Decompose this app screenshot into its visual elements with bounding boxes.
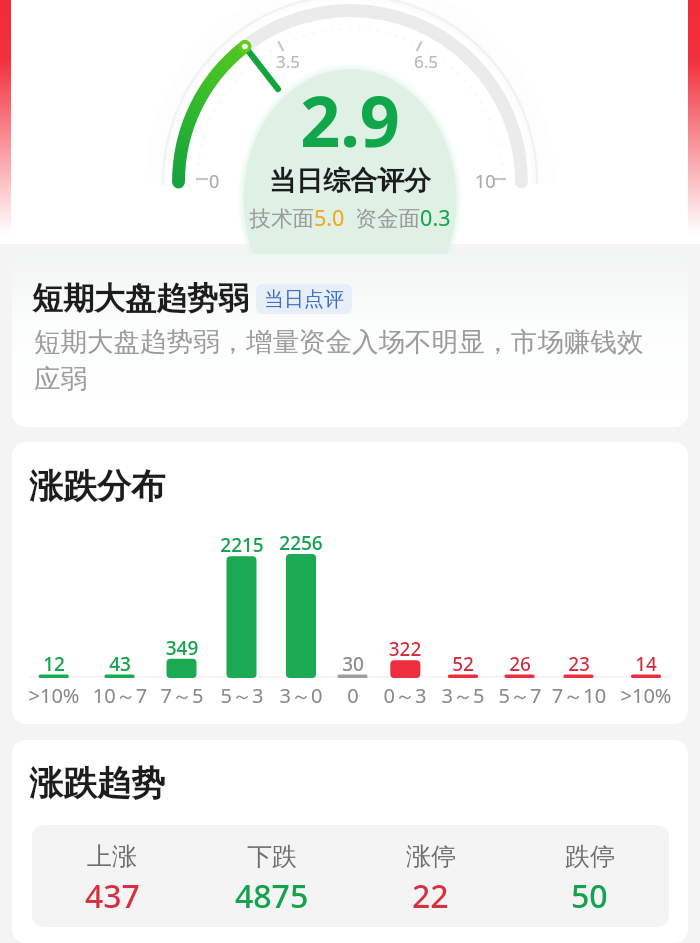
- staticText: 2.9: [0, 72, 700, 167]
- staticText: 349: [147, 635, 217, 661]
- staticText: 0: [209, 169, 220, 194]
- staticText: 5～7: [485, 682, 555, 709]
- staticText: 437: [85, 874, 140, 918]
- button[interactable]: 涨跌分布: [12, 442, 688, 724]
- staticText: 6.5: [414, 50, 439, 73]
- staticText: 43: [85, 651, 155, 677]
- staticText: 7～10: [544, 682, 614, 709]
- staticText: 50: [571, 874, 608, 918]
- staticText: 技术面5.0 资金面0.3: [0, 203, 700, 232]
- staticText: 10: [475, 169, 496, 194]
- button[interactable]: 跌停: [510, 825, 669, 927]
- staticText: 3～0: [266, 682, 336, 709]
- staticText: 上涨: [87, 841, 137, 872]
- staticText: 下跌: [247, 841, 297, 872]
- staticText: 4875: [235, 874, 309, 918]
- staticText: 5～3: [207, 682, 277, 709]
- button[interactable]: 短期大盘趋势弱: [12, 254, 688, 427]
- button[interactable]: 上涨: [32, 825, 192, 927]
- button[interactable]: 涨跌趋势: [12, 740, 688, 943]
- staticText: 当日综合评分: [0, 164, 700, 198]
- staticText: 0～3: [370, 682, 440, 709]
- staticText: 23: [544, 651, 614, 677]
- staticText: 短期大盘趋势弱，增量资金入场不明显，市场赚钱效应弱: [34, 325, 657, 396]
- staticText: 短期大盘趋势弱: [32, 279, 249, 318]
- staticText: 14: [611, 651, 681, 677]
- staticText: 3～5: [428, 682, 498, 709]
- staticText: 26: [485, 651, 555, 677]
- staticText: 322: [370, 636, 440, 662]
- staticText: 22: [412, 874, 449, 918]
- staticText: 当日点评: [264, 287, 344, 312]
- staticText: 2215: [207, 532, 277, 558]
- staticText: >10%: [611, 682, 681, 709]
- staticText: 7～5: [147, 682, 217, 709]
- staticText: 涨跌趋势: [29, 762, 165, 805]
- staticText: 12: [19, 651, 89, 677]
- staticText: 30: [318, 651, 388, 677]
- staticText: 涨停: [406, 841, 456, 872]
- staticText: >10%: [19, 682, 89, 709]
- staticText: 0: [318, 682, 388, 709]
- staticText: 3.5: [276, 50, 301, 73]
- staticText: 2256: [266, 530, 336, 556]
- staticText: 10～7: [85, 682, 155, 709]
- button[interactable]: 涨停: [351, 825, 510, 927]
- staticText: 52: [428, 651, 498, 677]
- staticText: 涨跌分布: [29, 465, 165, 508]
- button[interactable]: 下跌: [192, 825, 351, 927]
- staticText: 跌停: [565, 841, 615, 872]
